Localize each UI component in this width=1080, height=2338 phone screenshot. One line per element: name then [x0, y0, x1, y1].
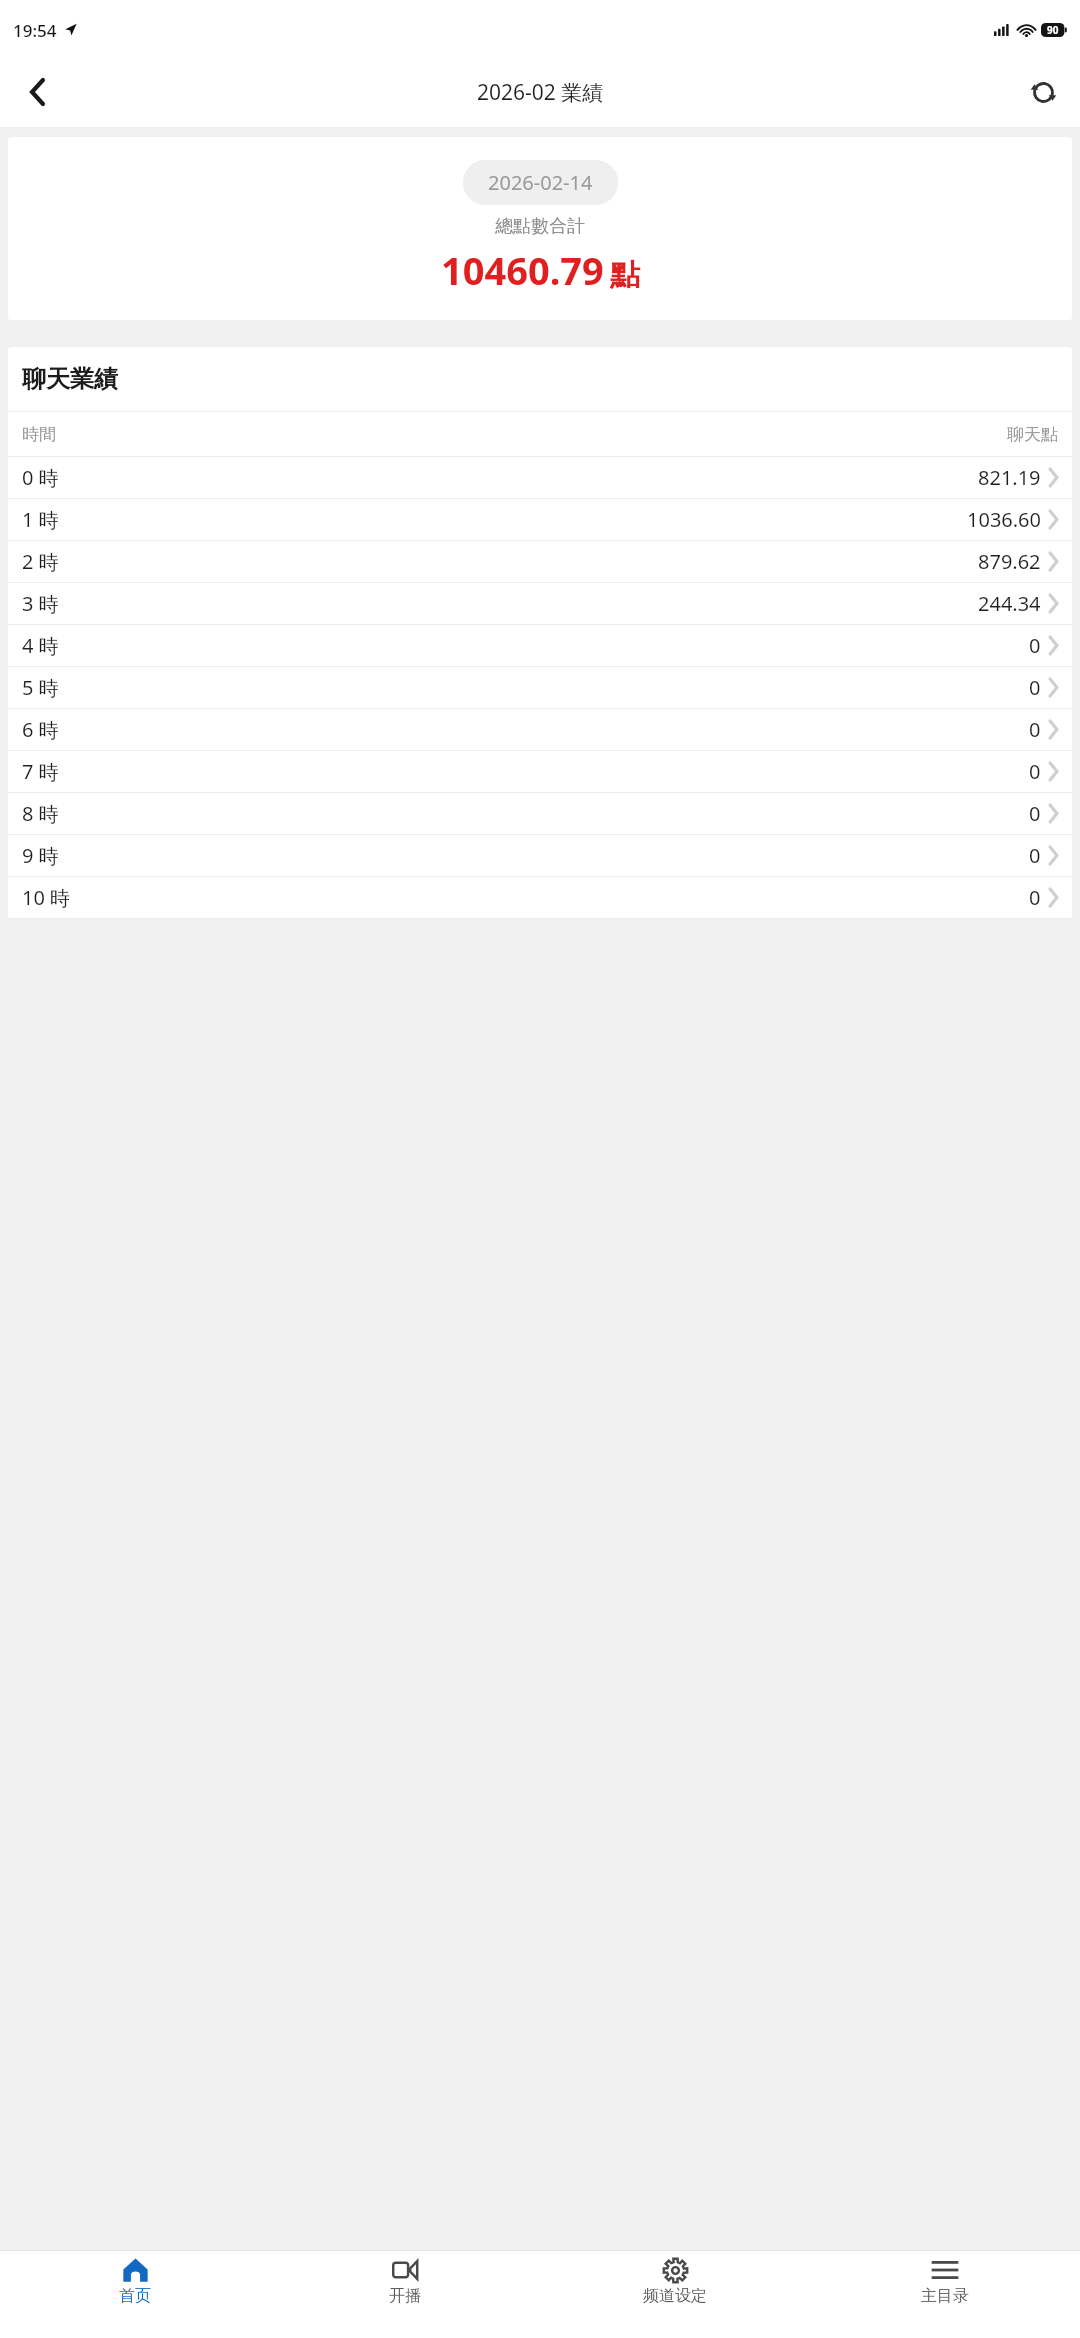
staticText: 0 — [1029, 884, 1041, 911]
staticText: 點 — [610, 256, 640, 294]
staticText: 879.62 — [978, 548, 1041, 575]
button[interactable]: 4 時 — [8, 625, 1072, 666]
staticText: 8 時 — [22, 800, 59, 827]
button[interactable]: 0 時 — [8, 457, 1072, 498]
button[interactable]: 3 時 — [8, 583, 1072, 624]
button[interactable]: 1 時 — [8, 499, 1072, 540]
staticText: 首页 — [119, 2286, 151, 2306]
staticText: 90 — [1047, 23, 1059, 37]
staticText: 總點數合計 — [495, 215, 585, 238]
staticText: 9 時 — [22, 842, 59, 869]
staticText: 聊天點 — [1007, 424, 1058, 445]
button[interactable]: Back — [0, 57, 74, 127]
staticText: 主目录 — [921, 2286, 969, 2306]
staticText: 0 — [1029, 758, 1041, 785]
button[interactable]: 首页 — [0, 2251, 270, 2312]
button[interactable]: 6 時 — [8, 709, 1072, 750]
staticText: 19:54 — [13, 19, 57, 42]
staticText: 0 — [1029, 674, 1041, 701]
staticText: 7 時 — [22, 758, 59, 785]
staticText: 2 時 — [22, 548, 59, 575]
staticText: 0 — [1029, 842, 1041, 869]
staticText: 3 時 — [22, 590, 59, 617]
button[interactable]: 主目录 — [810, 2251, 1080, 2312]
button[interactable]: 开播 — [270, 2251, 540, 2312]
staticText: 10460.79 — [441, 244, 604, 296]
button[interactable]: 2 時 — [8, 541, 1072, 582]
button[interactable]: 7 時 — [8, 751, 1072, 792]
staticText: 10 時 — [22, 884, 71, 911]
button[interactable]: 10 時 — [8, 877, 1072, 918]
staticText: 0 — [1029, 632, 1041, 659]
button[interactable]: 9 時 — [8, 835, 1072, 876]
staticText: 4 時 — [22, 632, 59, 659]
staticText: 244.34 — [978, 590, 1041, 617]
button[interactable]: 8 時 — [8, 793, 1072, 834]
staticText: 频道设定 — [643, 2286, 707, 2306]
button[interactable]: 5 時 — [8, 667, 1072, 708]
staticText: 聊天業績 — [22, 364, 118, 394]
staticText: 5 時 — [22, 674, 59, 701]
staticText: 0 — [1029, 800, 1041, 827]
staticText: 开播 — [389, 2286, 421, 2306]
staticText: 0 時 — [22, 464, 59, 491]
button[interactable]: 频道设定 — [540, 2251, 810, 2312]
staticText: 時間 — [22, 424, 56, 445]
staticText: 821.19 — [978, 464, 1041, 491]
staticText: 0 — [1029, 716, 1041, 743]
staticText: 2026-02-14 — [488, 169, 593, 196]
staticText: 1036.60 — [967, 506, 1041, 533]
staticText: 6 時 — [22, 716, 59, 743]
staticText: 1 時 — [22, 506, 59, 533]
button[interactable]: Refresh — [1006, 57, 1080, 127]
staticText: 2026-02 業績 — [477, 78, 604, 107]
